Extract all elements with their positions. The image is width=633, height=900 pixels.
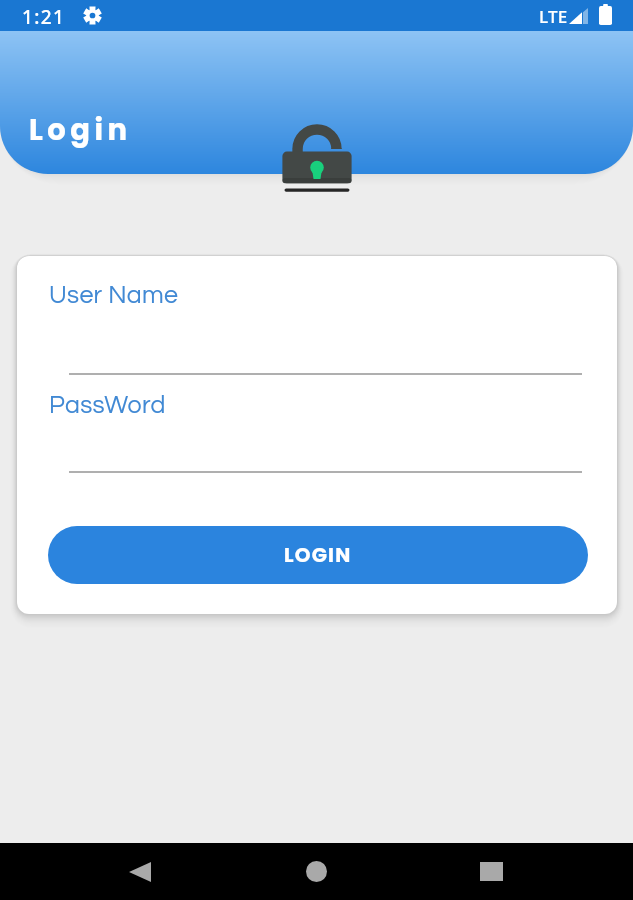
button[interactable]: Settings xyxy=(83,6,102,25)
staticText: PassWord xyxy=(49,392,166,418)
button[interactable]: User Name xyxy=(49,282,569,312)
button[interactable]: LOGIN xyxy=(48,526,588,584)
button[interactable]: Back xyxy=(110,843,170,900)
staticText: User Name xyxy=(49,282,179,308)
button[interactable]: Recent apps xyxy=(461,843,521,900)
staticText: LOGIN xyxy=(284,541,352,569)
other: Secure login xyxy=(282,122,352,194)
button[interactable]: Home xyxy=(286,843,346,900)
staticText: LTE xyxy=(539,5,568,28)
button[interactable]: PassWord xyxy=(49,392,569,422)
staticText: Login xyxy=(29,110,132,151)
staticText: 1:21 xyxy=(22,4,66,30)
